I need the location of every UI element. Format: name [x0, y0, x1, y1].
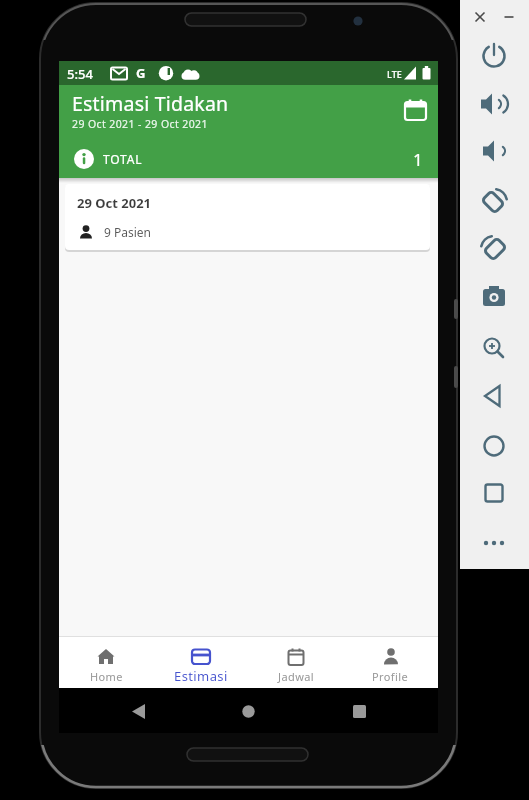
staticText: TOTAL: [103, 151, 143, 167]
button[interactable]: [345, 697, 373, 725]
staticText: Estimasi Tidakan: [72, 90, 229, 117]
button[interactable]: Jadwal: [248, 637, 343, 688]
staticText: G: [136, 64, 146, 82]
button[interactable]: [234, 697, 262, 725]
button[interactable]: Home: [59, 637, 153, 688]
staticText: Estimasi: [174, 667, 228, 685]
staticText: Profile: [372, 669, 409, 684]
button[interactable]: TOTAL: [74, 140, 423, 178]
button[interactable]: 29 Oct 2021: [65, 184, 430, 250]
staticText: Home: [90, 669, 123, 684]
button[interactable]: Estimasi: [153, 637, 248, 688]
button[interactable]: [124, 697, 152, 725]
staticText: 9 Pasien: [104, 224, 152, 240]
staticText: 29 Oct 2021: [77, 194, 152, 212]
staticText: LTE: [387, 68, 402, 80]
staticText: 1: [413, 148, 423, 171]
staticText: 5:54: [67, 65, 93, 83]
button[interactable]: [398, 93, 432, 127]
staticText: 29 Oct 2021 - 29 Oct 2021: [72, 117, 208, 131]
button[interactable]: Profile: [343, 637, 438, 688]
staticText: Jadwal: [278, 669, 314, 684]
